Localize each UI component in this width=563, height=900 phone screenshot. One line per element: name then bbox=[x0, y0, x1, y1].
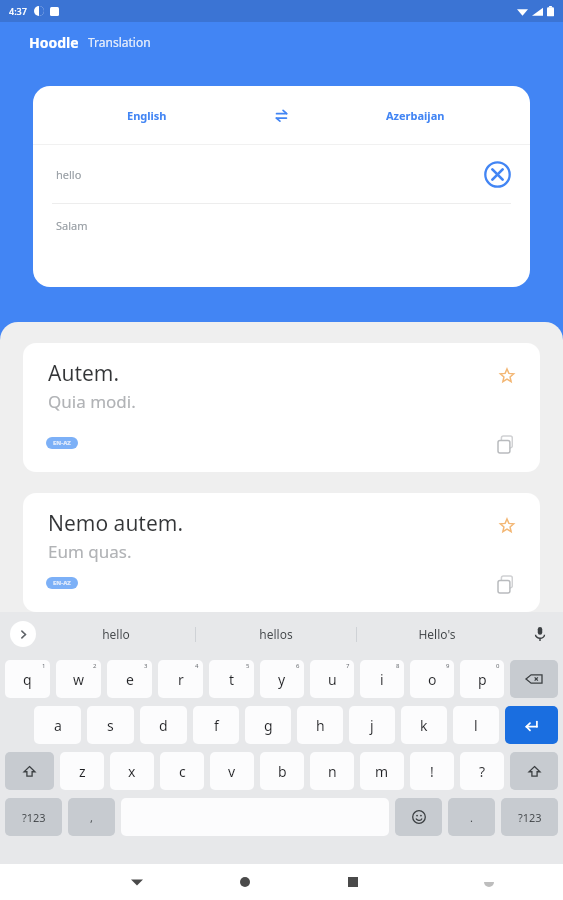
staticText: English bbox=[127, 108, 167, 123]
staticText: Quia modi. bbox=[48, 390, 136, 413]
button[interactable]: Shift bbox=[5, 752, 54, 790]
button[interactable]: ?123 bbox=[501, 798, 558, 836]
staticText: ?123 bbox=[22, 810, 46, 825]
staticText: 5 bbox=[246, 662, 250, 670]
staticText: x bbox=[128, 762, 136, 781]
button[interactable]: h bbox=[297, 706, 343, 744]
button[interactable]: l bbox=[453, 706, 499, 744]
button[interactable]: u bbox=[310, 660, 354, 698]
button[interactable]: , bbox=[68, 798, 115, 836]
button[interactable]: i bbox=[360, 660, 404, 698]
button[interactable]: p bbox=[460, 660, 504, 698]
button[interactable]: Expand toolbar bbox=[10, 621, 36, 647]
staticText: h bbox=[316, 716, 325, 735]
staticText: 1 bbox=[42, 662, 46, 670]
staticText: s bbox=[107, 716, 114, 735]
button[interactable]: Recents bbox=[338, 867, 368, 897]
button[interactable]: y bbox=[260, 660, 304, 698]
staticText: u bbox=[328, 670, 337, 689]
button[interactable]: a bbox=[34, 706, 81, 744]
button[interactable]: q bbox=[5, 660, 50, 698]
staticText: ?123 bbox=[518, 810, 542, 825]
button[interactable]: Emoji bbox=[395, 798, 442, 836]
button[interactable]: k bbox=[401, 706, 447, 744]
staticText: , bbox=[90, 810, 93, 825]
button[interactable]: ! bbox=[410, 752, 454, 790]
button[interactable]: Back bbox=[122, 867, 152, 897]
staticText: m bbox=[375, 762, 389, 781]
button[interactable]: Backspace bbox=[510, 660, 558, 698]
staticText: t bbox=[229, 670, 235, 689]
button[interactable]: Clear text bbox=[481, 158, 513, 190]
button[interactable]: b bbox=[260, 752, 304, 790]
button[interactable]: Azerbaijan bbox=[301, 86, 530, 144]
staticText: 4 bbox=[195, 662, 199, 670]
button[interactable]: e bbox=[107, 660, 152, 698]
staticText: Translation bbox=[88, 34, 151, 50]
staticText: g bbox=[264, 716, 273, 735]
button[interactable]: t bbox=[209, 660, 254, 698]
button[interactable]: ?123 bbox=[5, 798, 62, 836]
staticText: EN-AZ bbox=[53, 439, 71, 447]
staticText: f bbox=[214, 716, 219, 735]
button[interactable]: Shift bbox=[510, 752, 558, 790]
button[interactable]: English bbox=[33, 86, 261, 144]
button[interactable]: f bbox=[193, 706, 239, 744]
button[interactable]: Swap languages bbox=[261, 95, 301, 135]
staticText: p bbox=[478, 670, 487, 689]
staticText: b bbox=[278, 762, 287, 781]
button[interactable]: n bbox=[310, 752, 354, 790]
button[interactable]: Hide keyboard bbox=[474, 867, 504, 897]
staticText: 0 bbox=[496, 662, 500, 670]
button[interactable]: . bbox=[448, 798, 495, 836]
button[interactable]: d bbox=[140, 706, 187, 744]
staticText: . bbox=[470, 810, 473, 825]
button[interactable]: ? bbox=[460, 752, 504, 790]
button[interactable]: Home bbox=[230, 867, 260, 897]
staticText: ! bbox=[430, 762, 434, 781]
staticText: c bbox=[179, 762, 186, 781]
staticText: 4:37 bbox=[9, 5, 27, 17]
button[interactable]: r bbox=[158, 660, 203, 698]
staticText: j bbox=[370, 716, 374, 735]
staticText: e bbox=[126, 670, 134, 689]
staticText: Azerbaijan bbox=[386, 108, 445, 123]
button[interactable]: Copy bbox=[494, 572, 518, 596]
button[interactable]: Favorite bbox=[23, 343, 540, 472]
button[interactable]: w bbox=[56, 660, 101, 698]
staticText: Hello's bbox=[418, 626, 456, 642]
button[interactable]: Enter bbox=[505, 706, 558, 744]
button[interactable]: m bbox=[360, 752, 404, 790]
staticText: v bbox=[228, 762, 236, 781]
button[interactable]: Favorite bbox=[496, 515, 518, 537]
staticText: 7 bbox=[346, 662, 350, 670]
staticText: Hoodle bbox=[29, 33, 79, 52]
button[interactable]: j bbox=[349, 706, 395, 744]
button[interactable]: z bbox=[60, 752, 104, 790]
staticText: hellos bbox=[259, 626, 293, 642]
button[interactable]: Favorite bbox=[496, 365, 518, 387]
staticText: r bbox=[178, 670, 184, 689]
button[interactable]: s bbox=[87, 706, 134, 744]
button[interactable]: v bbox=[210, 752, 254, 790]
staticText: 6 bbox=[296, 662, 300, 670]
staticText: Nemo autem. bbox=[48, 509, 184, 538]
button[interactable]: Voice input bbox=[517, 612, 563, 656]
button[interactable]: Hello's bbox=[357, 612, 517, 656]
button[interactable]: Favorite bbox=[23, 493, 540, 612]
button[interactable]: o bbox=[410, 660, 454, 698]
button[interactable]: hellos bbox=[196, 612, 356, 656]
staticText: Eum quas. bbox=[48, 540, 132, 563]
staticText: 9 bbox=[446, 662, 450, 670]
staticText: q bbox=[23, 670, 32, 689]
staticText: z bbox=[79, 762, 86, 781]
button[interactable]: Copy bbox=[494, 432, 518, 456]
button[interactable]: c bbox=[160, 752, 204, 790]
button[interactable]: hello bbox=[36, 612, 195, 656]
button[interactable]: g bbox=[245, 706, 291, 744]
staticText: 2 bbox=[93, 662, 97, 670]
staticText: ? bbox=[479, 762, 486, 781]
staticText: o bbox=[428, 670, 437, 689]
button[interactable]: x bbox=[110, 752, 154, 790]
